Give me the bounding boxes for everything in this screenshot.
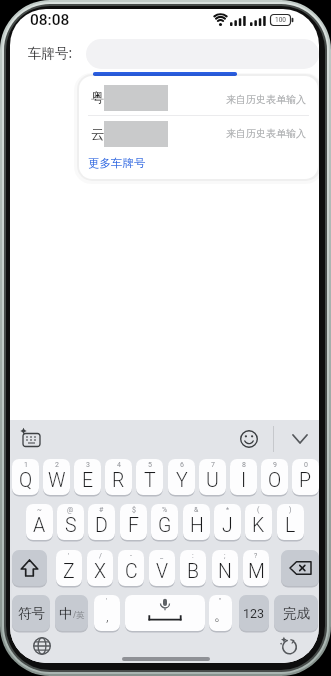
button[interactable]: %	[151, 504, 178, 540]
staticText: 粤	[91, 89, 105, 105]
staticText: Z	[63, 560, 75, 583]
staticText: S	[65, 514, 77, 537]
button[interactable]: -	[118, 550, 144, 586]
staticText: /英	[73, 609, 85, 621]
staticText: 123	[243, 606, 265, 621]
staticText: E	[82, 469, 94, 492]
staticText: Q	[19, 469, 33, 492]
button[interactable]	[79, 78, 318, 115]
staticText: I	[241, 469, 247, 492]
button[interactable]	[279, 637, 298, 655]
button[interactable]	[33, 637, 51, 655]
staticText: N	[218, 560, 232, 583]
button[interactable]	[281, 550, 319, 586]
staticText: X	[94, 560, 106, 583]
staticText: 1	[24, 461, 28, 469]
button[interactable]: @	[57, 504, 84, 540]
staticText: 7	[211, 461, 215, 469]
staticText: 100	[275, 16, 286, 24]
staticText: @	[67, 506, 74, 514]
button[interactable]	[20, 428, 42, 449]
button[interactable]: 符号	[12, 595, 50, 631]
button[interactable]: 123	[239, 595, 269, 631]
staticText: J	[222, 514, 233, 537]
staticText: U	[206, 469, 219, 492]
button[interactable]: 5	[136, 459, 163, 495]
button[interactable]: "	[209, 595, 232, 631]
staticText: B	[187, 560, 199, 583]
button[interactable]: ~	[26, 504, 53, 540]
staticText: F	[128, 514, 139, 537]
staticText: G	[158, 514, 172, 537]
staticText: O	[268, 469, 282, 492]
button[interactable]: )	[277, 504, 304, 540]
button[interactable]: _	[149, 550, 175, 586]
staticText: 来自历史表单输入	[226, 127, 306, 140]
button[interactable]	[125, 595, 205, 631]
staticText: *	[226, 506, 230, 514]
button[interactable]: 完成	[274, 595, 318, 631]
staticText: /	[99, 552, 102, 560]
staticText: 符号	[18, 605, 45, 622]
button[interactable]: 6	[168, 459, 195, 495]
staticText: %	[162, 506, 168, 514]
staticText: 。	[214, 607, 228, 625]
button[interactable]: *	[214, 504, 241, 540]
staticText: 0	[304, 461, 308, 469]
staticText: 8	[242, 461, 246, 469]
button[interactable]: $	[120, 504, 147, 540]
button[interactable]: 8	[230, 459, 257, 495]
button[interactable]: #	[88, 504, 115, 540]
staticText: 4	[117, 461, 121, 469]
button[interactable]: ;	[212, 550, 238, 586]
staticText: 更多车牌号	[88, 156, 146, 170]
staticText: 完成	[283, 605, 310, 622]
button[interactable]: 2	[43, 459, 70, 495]
staticText: M	[248, 560, 265, 583]
button[interactable]: :	[180, 550, 206, 586]
staticText: R	[112, 469, 125, 492]
staticText: (	[257, 506, 260, 514]
button[interactable]	[12, 550, 47, 586]
staticText: 中	[59, 605, 73, 622]
staticText: V	[156, 560, 169, 583]
button[interactable]: 更多车牌号	[88, 152, 208, 174]
button[interactable]: (	[245, 504, 272, 540]
staticText: -	[130, 552, 132, 560]
button[interactable]: 4	[105, 459, 132, 495]
staticText: H	[190, 514, 204, 537]
staticText: :	[192, 552, 194, 560]
button[interactable]: 9	[261, 459, 288, 495]
staticText: ?	[254, 552, 258, 560]
staticText: 车牌号:	[28, 44, 73, 61]
button[interactable]: '	[56, 550, 82, 586]
button[interactable]: &	[183, 504, 210, 540]
button[interactable]: 1	[12, 459, 39, 495]
staticText: _	[160, 552, 164, 560]
button[interactable]: ?	[243, 550, 269, 586]
staticText: ,	[106, 608, 109, 624]
staticText: P	[299, 469, 312, 492]
staticText: 9	[273, 461, 277, 469]
button[interactable]	[79, 115, 318, 152]
staticText: $	[132, 506, 136, 514]
staticText: 2	[55, 461, 59, 469]
staticText: '	[106, 597, 108, 605]
button[interactable]: 3	[74, 459, 101, 495]
button[interactable]	[290, 430, 310, 448]
staticText: '	[68, 552, 70, 560]
staticText: Y	[176, 469, 188, 492]
staticText: 来自历史表单输入	[226, 93, 306, 106]
button[interactable]: '	[94, 595, 120, 631]
button[interactable]	[239, 429, 259, 449]
button[interactable]: 7	[199, 459, 226, 495]
staticText: "	[219, 597, 222, 605]
staticText: D	[95, 514, 108, 537]
staticText: ~	[37, 506, 42, 514]
staticText: L	[285, 514, 296, 537]
button[interactable]: 中	[55, 595, 88, 631]
button[interactable]: /	[87, 550, 113, 586]
staticText: 3	[86, 461, 90, 469]
button[interactable]: 0	[292, 459, 319, 495]
